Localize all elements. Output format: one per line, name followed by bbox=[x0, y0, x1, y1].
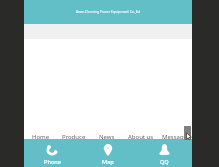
staticText: QQ bbox=[160, 158, 169, 166]
button[interactable]: Phone bbox=[24, 139, 80, 167]
button[interactable]: Message bbox=[158, 125, 192, 139]
staticText: About us bbox=[128, 133, 154, 141]
button[interactable]: News bbox=[90, 125, 124, 139]
button[interactable]: QQ bbox=[136, 139, 192, 167]
button[interactable]: Anan Denning Power Equipment Co.,ltd bbox=[24, 0, 192, 24]
other: Map bbox=[102, 144, 114, 155]
staticText: News bbox=[99, 133, 115, 141]
staticText: Anan Denning Power Equipment Co.,ltd bbox=[76, 9, 140, 14]
button[interactable]: Home bbox=[24, 125, 57, 139]
staticText: Map bbox=[102, 158, 114, 166]
button[interactable]: About us bbox=[124, 125, 158, 139]
staticText: Message bbox=[162, 133, 188, 141]
other: Phone bbox=[46, 144, 58, 155]
other: QQ bbox=[159, 144, 170, 155]
button[interactable]: Map bbox=[80, 139, 136, 167]
staticText: Phone bbox=[44, 158, 61, 166]
button[interactable]: Produce bbox=[57, 125, 90, 139]
staticText: Produce bbox=[62, 133, 86, 141]
staticText: Home bbox=[32, 133, 50, 141]
